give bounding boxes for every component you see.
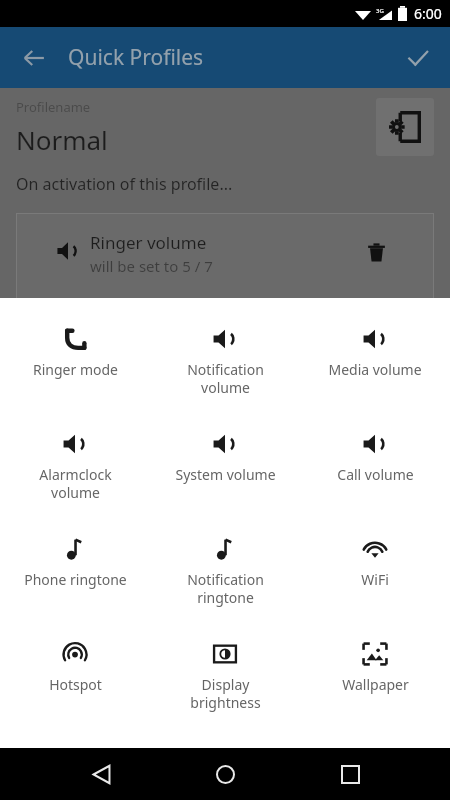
staticText: Notification volume [187, 360, 264, 397]
staticText: Hotspot [49, 675, 102, 694]
staticText: 3G [376, 7, 384, 15]
staticText: Media volume [328, 360, 422, 379]
button[interactable]: Alarmclock volume [0, 417, 150, 522]
staticText: On activation of this profile... [16, 173, 233, 195]
button[interactable]: Back [12, 36, 56, 80]
button[interactable]: Profile settings [376, 98, 434, 156]
staticText: Ringer volume [90, 231, 207, 254]
button[interactable]: Display brightness [150, 627, 300, 732]
button[interactable]: Recents [326, 750, 374, 798]
staticText: Ringer mode [33, 360, 118, 379]
button[interactable]: WiFi [300, 522, 450, 627]
staticText: WiFi [361, 570, 389, 589]
button[interactable]: Notification volume [150, 312, 300, 417]
staticText: Normal [16, 122, 108, 157]
button[interactable]: Home [201, 750, 249, 798]
button[interactable]: Media volume [300, 312, 450, 417]
button[interactable]: Wallpaper [300, 627, 450, 732]
button[interactable]: Hotspot [0, 627, 150, 732]
staticText: will be set to 5 / 7 [90, 256, 213, 276]
button[interactable]: Phone ringtone [0, 522, 150, 627]
staticText: System volume [175, 465, 276, 484]
staticText: Quick Profiles [68, 43, 204, 72]
button[interactable]: Notification ringtone [150, 522, 300, 627]
staticText: Display brightness [190, 675, 261, 712]
staticText: Call volume [337, 465, 414, 484]
button[interactable]: Save [396, 36, 440, 80]
staticText: Profilename [16, 98, 91, 116]
staticText: 6:00 [414, 4, 442, 23]
staticText: Phone ringtone [24, 570, 127, 589]
button[interactable]: Back [77, 750, 125, 798]
staticText: Wallpaper [342, 675, 409, 694]
button[interactable]: System volume [150, 417, 300, 522]
button[interactable]: Call volume [300, 417, 450, 522]
button[interactable]: Ringer mode [0, 312, 150, 417]
staticText: Alarmclock volume [39, 465, 112, 502]
staticText: Notification ringtone [187, 570, 264, 607]
